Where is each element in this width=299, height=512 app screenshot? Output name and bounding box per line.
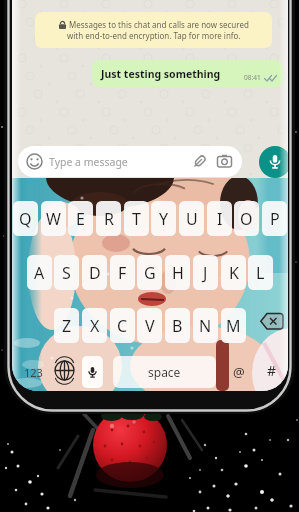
staticText: F: [118, 262, 127, 284]
staticText: J: [203, 262, 208, 284]
button[interactable]: Just testing something: [92, 60, 283, 87]
staticText: L: [256, 262, 265, 284]
staticText: O: [240, 208, 253, 230]
button[interactable]: D: [82, 255, 107, 290]
staticText: G: [144, 262, 156, 284]
button[interactable]: N: [193, 308, 218, 343]
button[interactable]: B: [165, 308, 190, 343]
button[interactable]: M: [221, 308, 246, 343]
staticText: 08:41: [244, 73, 261, 82]
button[interactable]: Z: [54, 308, 79, 343]
staticText: Type a message: [49, 155, 128, 169]
button[interactable]: 123: [20, 361, 46, 383]
button[interactable]: F: [110, 255, 135, 290]
staticText: with end-to-end encryption. Tap for more…: [67, 30, 241, 41]
button[interactable]: @: [229, 361, 249, 382]
staticText: P: [270, 208, 280, 230]
staticText: X: [90, 315, 100, 337]
staticText: @: [233, 363, 245, 381]
button[interactable]: A: [27, 255, 52, 290]
staticText: space: [148, 364, 181, 380]
staticText: Y: [159, 208, 169, 230]
button[interactable]: W: [41, 201, 66, 236]
button[interactable]: O: [234, 201, 259, 236]
button[interactable]: [54, 360, 75, 381]
button[interactable]: U: [179, 201, 204, 236]
button[interactable]: V: [137, 308, 162, 343]
button[interactable]: Q: [13, 201, 38, 236]
staticText: N: [199, 315, 212, 337]
button[interactable]: L: [248, 255, 273, 290]
staticText: Just testing something: [101, 67, 221, 81]
button[interactable]: space: [113, 356, 216, 388]
staticText: E: [76, 208, 85, 230]
staticText: U: [186, 208, 198, 230]
button[interactable]: T: [124, 201, 149, 236]
button[interactable]: R: [96, 201, 121, 236]
staticText: B: [172, 315, 183, 337]
staticText: M: [226, 315, 241, 337]
button[interactable]: S: [54, 255, 79, 290]
button[interactable]: #: [263, 360, 280, 381]
staticText: R: [104, 208, 114, 230]
button[interactable]: [82, 356, 103, 388]
staticText: #: [267, 361, 277, 380]
button[interactable]: Messages to this chat and calls are now …: [35, 12, 272, 48]
staticText: W: [46, 208, 61, 230]
button[interactable]: H: [165, 255, 190, 290]
button[interactable]: [260, 313, 284, 330]
staticText: I: [217, 208, 223, 230]
staticText: C: [117, 315, 128, 337]
button[interactable]: G: [137, 255, 162, 290]
staticText: Z: [62, 315, 72, 337]
button[interactable]: X: [82, 308, 107, 343]
staticText: 123: [24, 365, 43, 380]
button[interactable]: P: [262, 201, 287, 236]
button[interactable]: [259, 146, 288, 178]
staticText: S: [62, 262, 71, 284]
staticText: V: [145, 315, 155, 337]
staticText: T: [132, 208, 141, 230]
staticText: Q: [19, 208, 32, 230]
staticText: D: [89, 262, 101, 284]
staticText: A: [34, 262, 45, 284]
staticText: Messages to this chat and calls are now …: [69, 19, 249, 30]
button[interactable]: K: [221, 255, 246, 290]
staticText: H: [172, 262, 184, 284]
button[interactable]: C: [110, 308, 135, 343]
button[interactable]: J: [193, 255, 218, 290]
button[interactable]: Y: [151, 201, 176, 236]
staticText: K: [229, 262, 239, 284]
button[interactable]: Type a message: [18, 146, 242, 177]
button[interactable]: I: [207, 201, 232, 236]
button[interactable]: E: [68, 201, 93, 236]
